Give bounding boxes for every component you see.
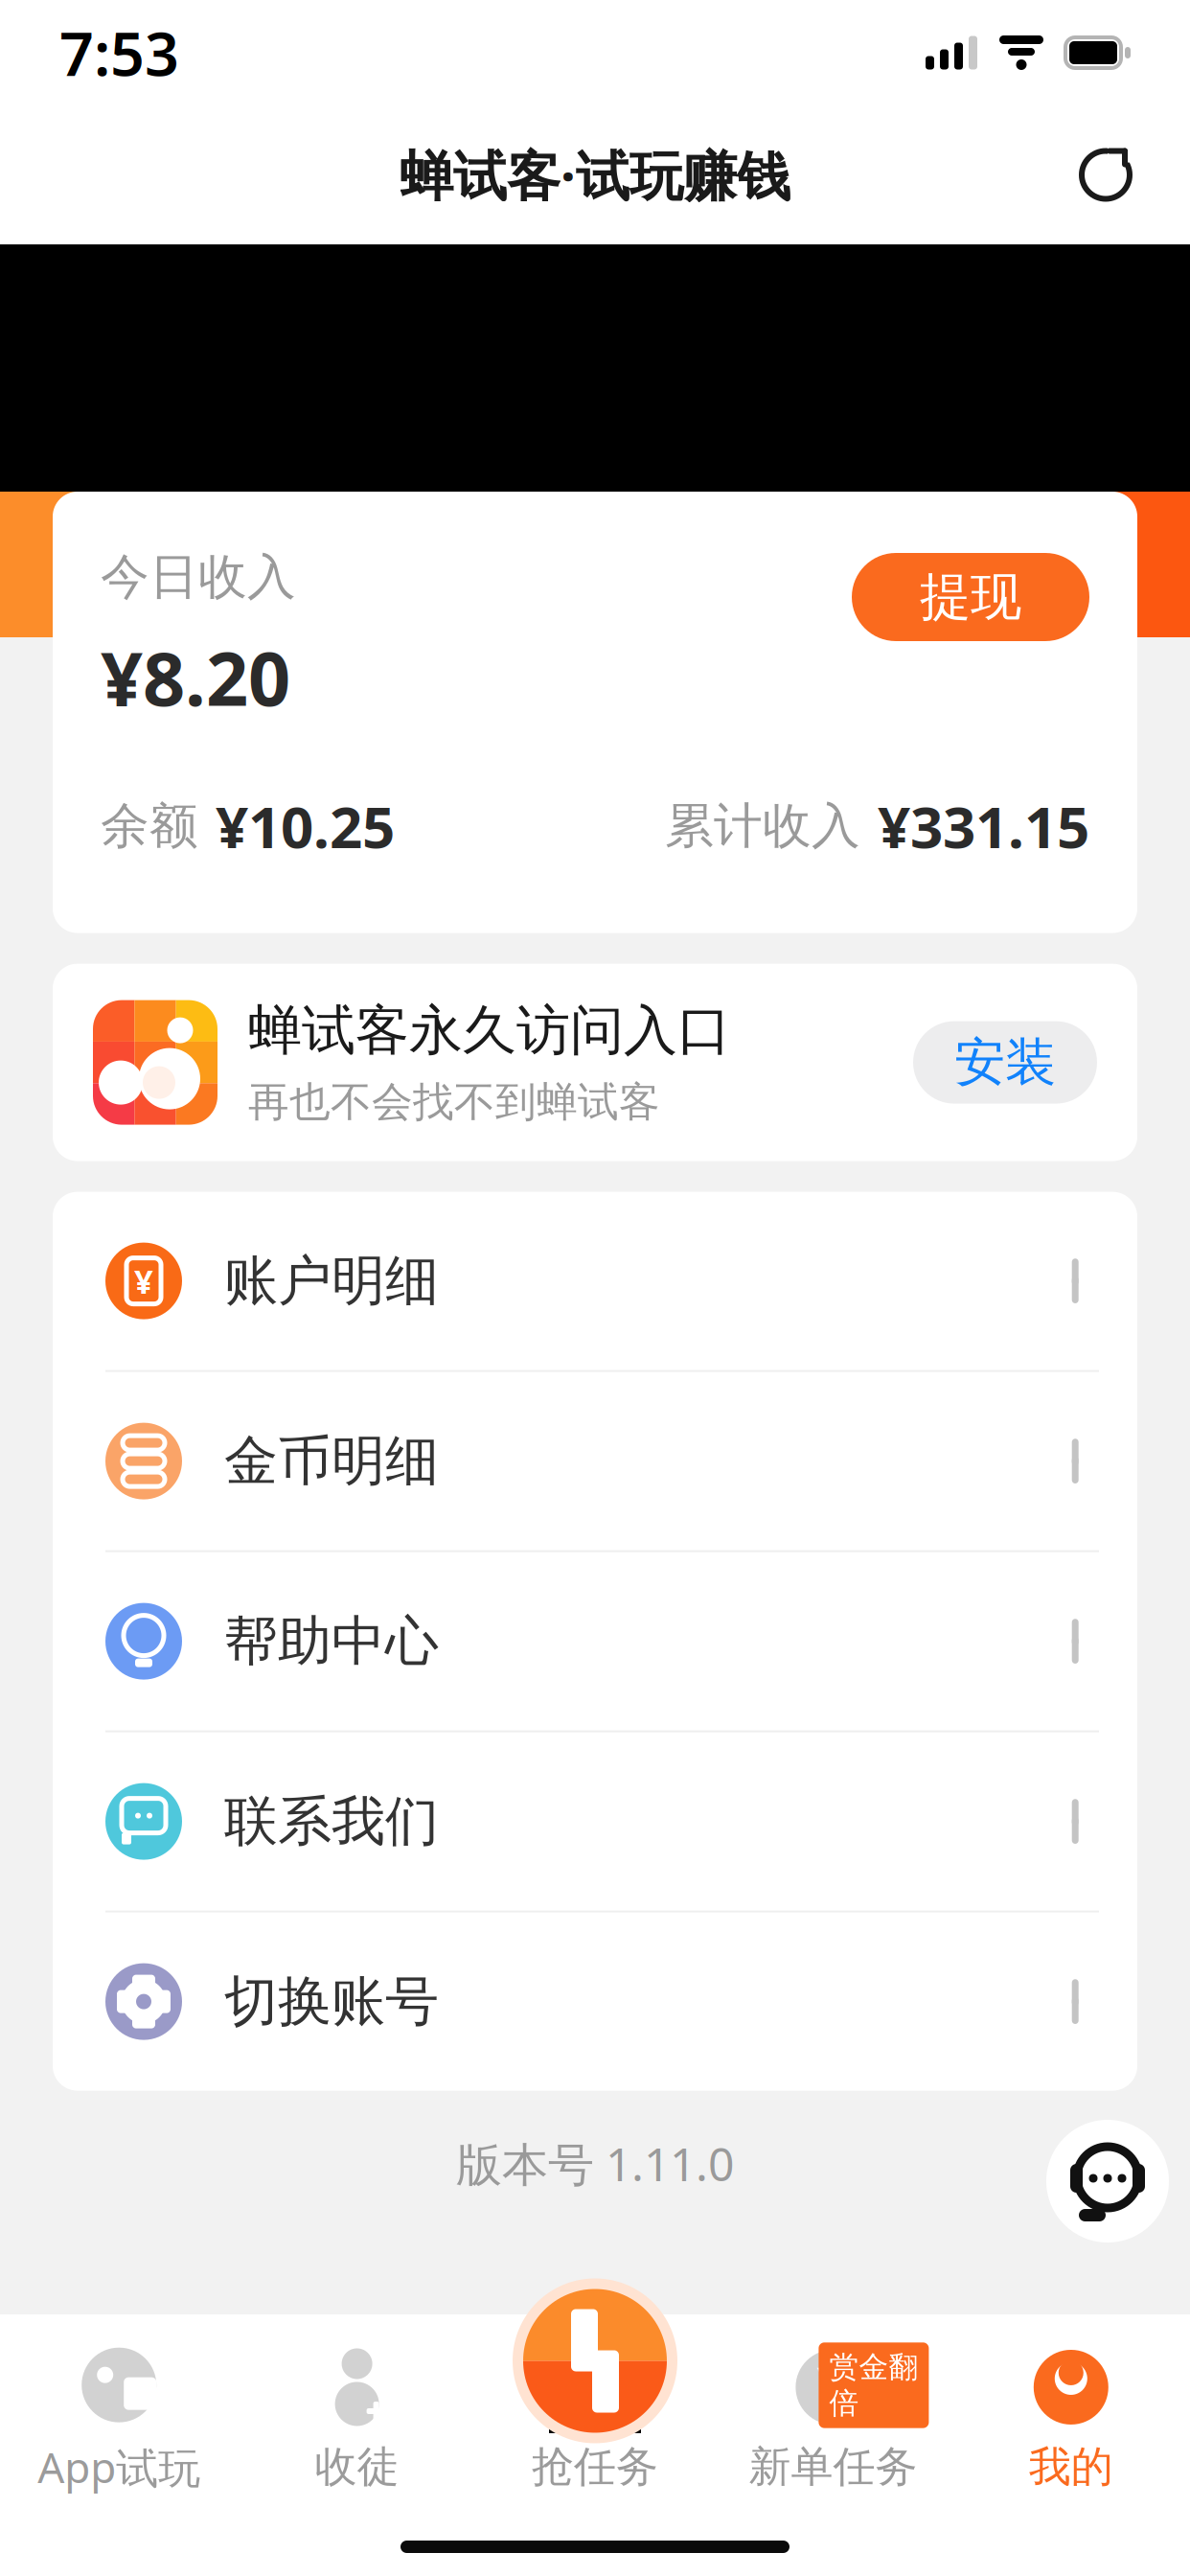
staticText: 抢任务 xyxy=(532,2441,658,2493)
staticText: 蝉试客·试玩赚钱 xyxy=(400,139,790,211)
button[interactable]: 帮助中心 xyxy=(53,1552,1137,1730)
staticText: 提现 xyxy=(920,566,1021,628)
button[interactable]: 在线客服 xyxy=(1046,2120,1169,2242)
staticText: ¥ xyxy=(134,1259,153,1303)
staticText: 版本号 1.11.0 xyxy=(456,2133,734,2194)
staticText: 联系我们 xyxy=(224,1788,439,1854)
staticText: ¥10.25 xyxy=(216,788,395,864)
button[interactable]: 金币明细 xyxy=(53,1372,1137,1550)
staticText: 帮助中心 xyxy=(224,1608,439,1674)
staticText: ¥331.15 xyxy=(878,788,1089,864)
staticText: 再也不会找不到蝉试客 xyxy=(248,1077,660,1127)
staticText: 余额 xyxy=(101,796,198,856)
button[interactable]: 抢任务 xyxy=(513,2278,677,2443)
button[interactable]: 暂时无法查看 xyxy=(0,244,1190,637)
button[interactable]: 抢任务 xyxy=(476,2339,714,2495)
button[interactable]: ¥ xyxy=(53,1192,1137,1370)
staticText: 账户明细 xyxy=(224,1248,439,1314)
staticText: App试玩 xyxy=(38,2439,200,2495)
staticText: 安装 xyxy=(954,1031,1056,1094)
staticText: ¥ xyxy=(816,2348,850,2426)
staticText: 金币明细 xyxy=(224,1428,439,1494)
button[interactable]: 切换账号 xyxy=(53,1912,1137,2091)
staticText: 收徒 xyxy=(315,2441,399,2493)
staticText: 蝉试客永久访问入口 xyxy=(248,998,731,1064)
staticText: 我的 xyxy=(1029,2441,1113,2493)
button[interactable]: App试玩 xyxy=(0,2339,238,2495)
button[interactable]: 收徒 xyxy=(238,2339,476,2495)
staticText: 赏金翻倍 xyxy=(829,2349,918,2421)
staticText: 7:53 xyxy=(59,13,179,93)
button[interactable]: 蝉试客永久访问入口 xyxy=(53,964,1137,1161)
button[interactable]: ¥ xyxy=(714,2339,952,2495)
button[interactable]: 刷新 xyxy=(1058,127,1154,223)
staticText: 新单任务 xyxy=(749,2441,917,2493)
staticText: 切换账号 xyxy=(224,1969,439,2035)
staticText: ¥8.20 xyxy=(101,628,290,726)
staticText: 累计收入 xyxy=(665,796,860,856)
staticText: 今日收入 xyxy=(101,547,296,607)
button[interactable]: 联系我们 xyxy=(53,1732,1137,1911)
button[interactable]: 我的 xyxy=(952,2339,1190,2495)
button[interactable]: 提现 xyxy=(852,553,1089,641)
